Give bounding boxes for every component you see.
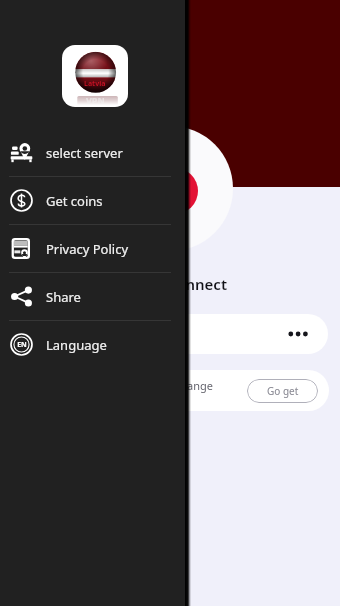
button[interactable]: Coins exchange: [12, 370, 329, 411]
staticText: Go get: [267, 384, 299, 398]
staticText: Get coins: [46, 192, 103, 210]
button[interactable]: Connect: [108, 126, 233, 251]
staticText: Coins exchange: [132, 378, 213, 393]
button[interactable]: select server: [0, 129, 185, 176]
staticText: select server: [46, 144, 123, 162]
button[interactable]: Get coins: [0, 177, 185, 224]
staticText: Tap to connect: [120, 274, 227, 294]
staticText: EN: [17, 340, 27, 350]
button[interactable]: Share: [0, 273, 185, 320]
staticText: Latvia: [84, 79, 106, 89]
button[interactable]: Go get: [247, 379, 318, 403]
button[interactable]: EN: [0, 321, 185, 368]
staticText: Share: [46, 288, 81, 306]
staticText: VPN: [86, 94, 105, 106]
button[interactable]: Privacy Policy: [0, 225, 185, 272]
staticText: Language: [46, 336, 107, 354]
staticText: Privacy Policy: [46, 240, 129, 258]
button[interactable]: [12, 314, 328, 354]
